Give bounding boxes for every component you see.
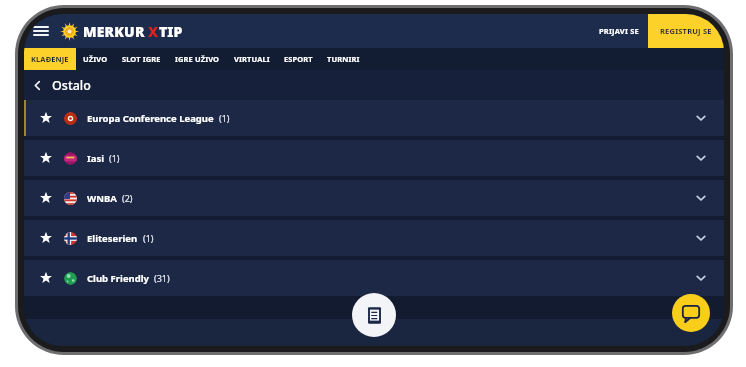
staticText: (1) [109,152,120,164]
button[interactable]: Favourite WNBA [24,180,724,216]
staticText: UŽIVO [83,54,108,64]
button[interactable]: VIRTUALI [227,48,277,70]
button[interactable]: TURNIRI [320,48,367,70]
button[interactable]: Betslip [352,293,396,337]
button[interactable]: MerkurXtip home [58,20,185,43]
button[interactable]: Expand Iasi [684,141,718,175]
staticText: Europa Conference League [87,112,214,125]
button[interactable]: IGRE UŽIVO [168,48,227,70]
button[interactable]: Favourite Club Friendly [24,260,724,296]
button[interactable]: Favourite Europa Conference League [24,100,724,136]
button[interactable]: Menu [28,18,54,44]
button[interactable]: Expand Europa Conference League [684,101,718,135]
staticText: IGRE UŽIVO [175,54,220,64]
button[interactable]: Favourite Europa Conference League [36,108,56,128]
staticText: MERKUR [83,22,145,41]
staticText: ESPORT [284,54,313,64]
button[interactable]: Expand WNBA [684,181,718,215]
button[interactable]: Expand Eliteserien [684,221,718,255]
staticText: KLAĐENJE [31,54,69,64]
staticText: (2) [122,192,133,204]
staticText: SLOT IGRE [122,54,161,64]
staticText: TURNIRI [327,54,360,64]
staticText: REGISTRUJ SE [660,26,712,36]
button[interactable]: SLOT IGRE [115,48,168,70]
button[interactable]: REGISTRUJ SE [648,14,724,48]
button[interactable]: Favourite Iasi [24,140,724,176]
button[interactable]: Expand Club Friendly [684,261,718,295]
staticText: Club Friendly [87,272,149,285]
button[interactable]: Favourite WNBA [36,188,56,208]
button[interactable]: Favourite Eliteserien [36,228,56,248]
staticText: (31) [154,272,170,284]
staticText: Ostalo [52,77,91,94]
button[interactable]: Back [24,72,50,98]
button[interactable]: Favourite Club Friendly [36,268,56,288]
staticText: (1) [219,112,230,124]
staticText: X [148,22,159,41]
staticText: (1) [143,232,154,244]
button[interactable]: PRIJAVI SE [590,14,648,48]
staticText: VIRTUALI [234,54,270,64]
staticText: WNBA [87,192,117,205]
button[interactable]: UŽIVO [76,48,115,70]
button[interactable]: ESPORT [277,48,320,70]
staticText: Iasi [87,152,104,165]
button[interactable]: KLAĐENJE [24,48,76,70]
button[interactable]: Favourite Eliteserien [24,220,724,256]
staticText: TIP [159,22,183,41]
staticText: Eliteserien [87,232,138,245]
button[interactable]: Live chat [672,294,710,332]
staticText: PRIJAVI SE [599,26,639,36]
button[interactable]: Favourite Iasi [36,148,56,168]
